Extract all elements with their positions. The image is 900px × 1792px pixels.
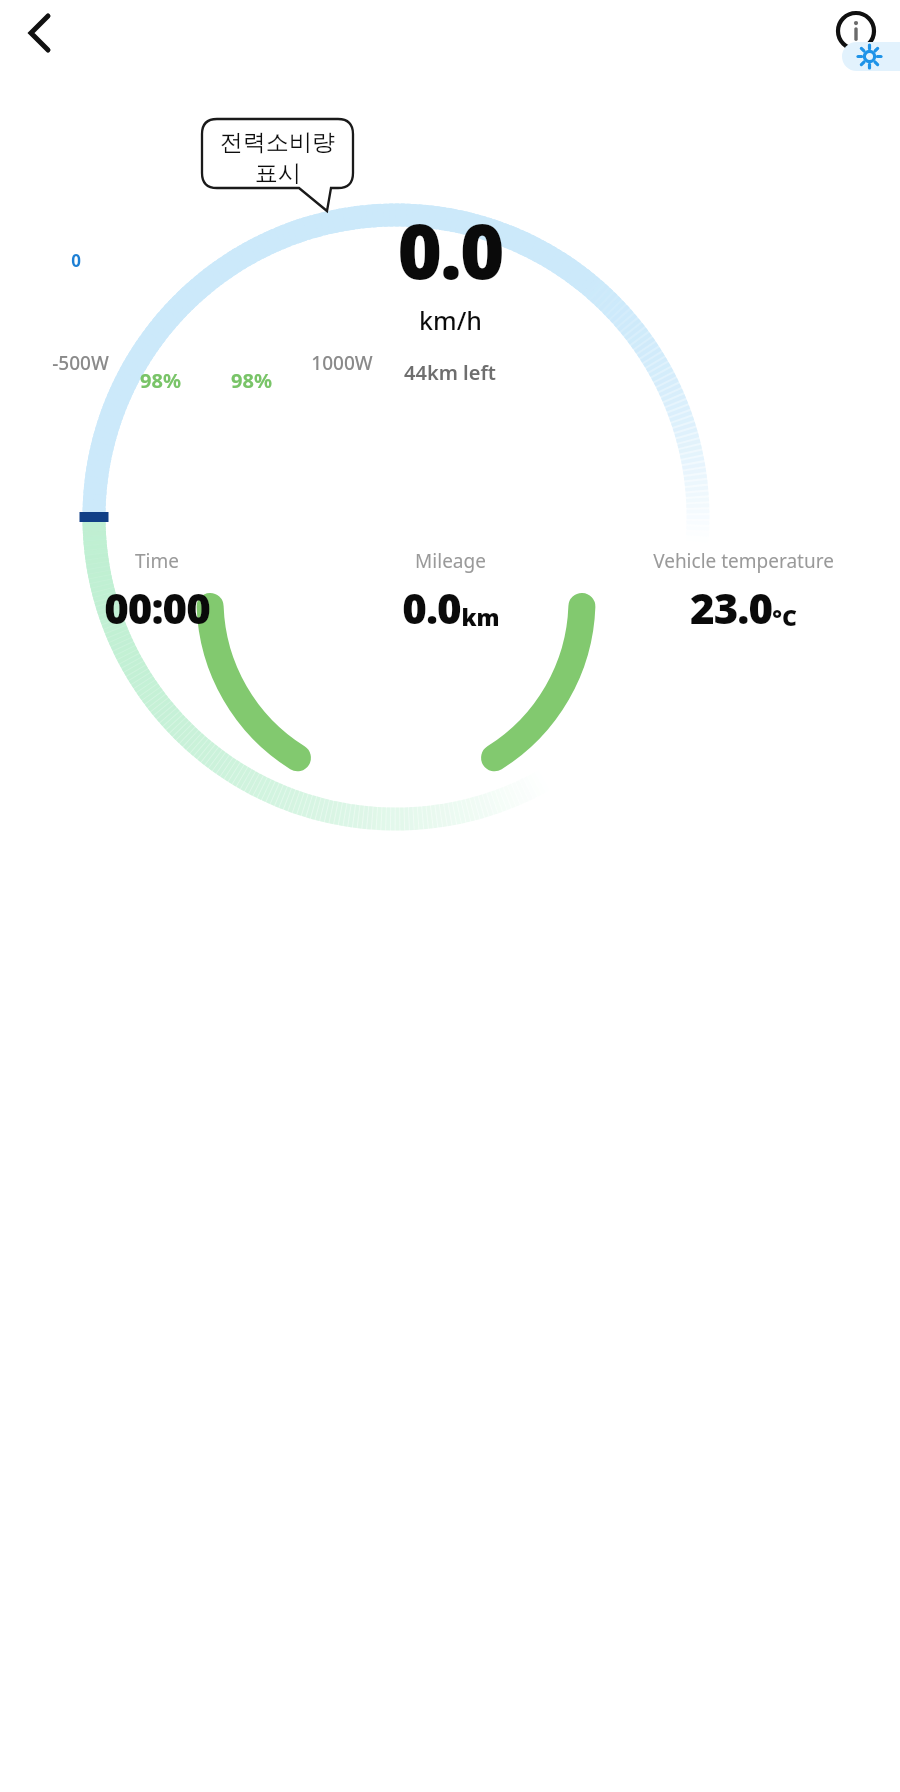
button[interactable]: Information [829,4,883,58]
staticText: Mileage [415,548,486,574]
staticText: 44km left [404,359,496,386]
staticText: 전력소비량 [220,128,335,157]
staticText: 표시 [255,159,301,188]
staticText: Vehicle temperature [653,548,834,574]
staticText: °C [772,601,797,632]
staticText: 00:00 [104,579,210,636]
staticText: Time [135,548,179,574]
staticText: 98% [231,367,272,394]
button[interactable]: Time [10,548,304,636]
button[interactable]: Mileage [304,548,597,636]
button[interactable]: Vehicle temperature [597,548,890,636]
staticText: 0 [71,249,81,272]
staticText: km [461,601,500,632]
staticText: 23.0 [690,579,772,636]
staticText: 0.0 [402,579,461,636]
staticText: -500W [52,350,109,376]
button[interactable]: Brightness [842,42,900,71]
staticText: 1000W [311,350,373,376]
staticText: 0.0 [397,198,503,302]
staticText: 98% [140,367,181,394]
staticText: km/h [419,303,482,337]
button[interactable]: Back [8,2,70,64]
